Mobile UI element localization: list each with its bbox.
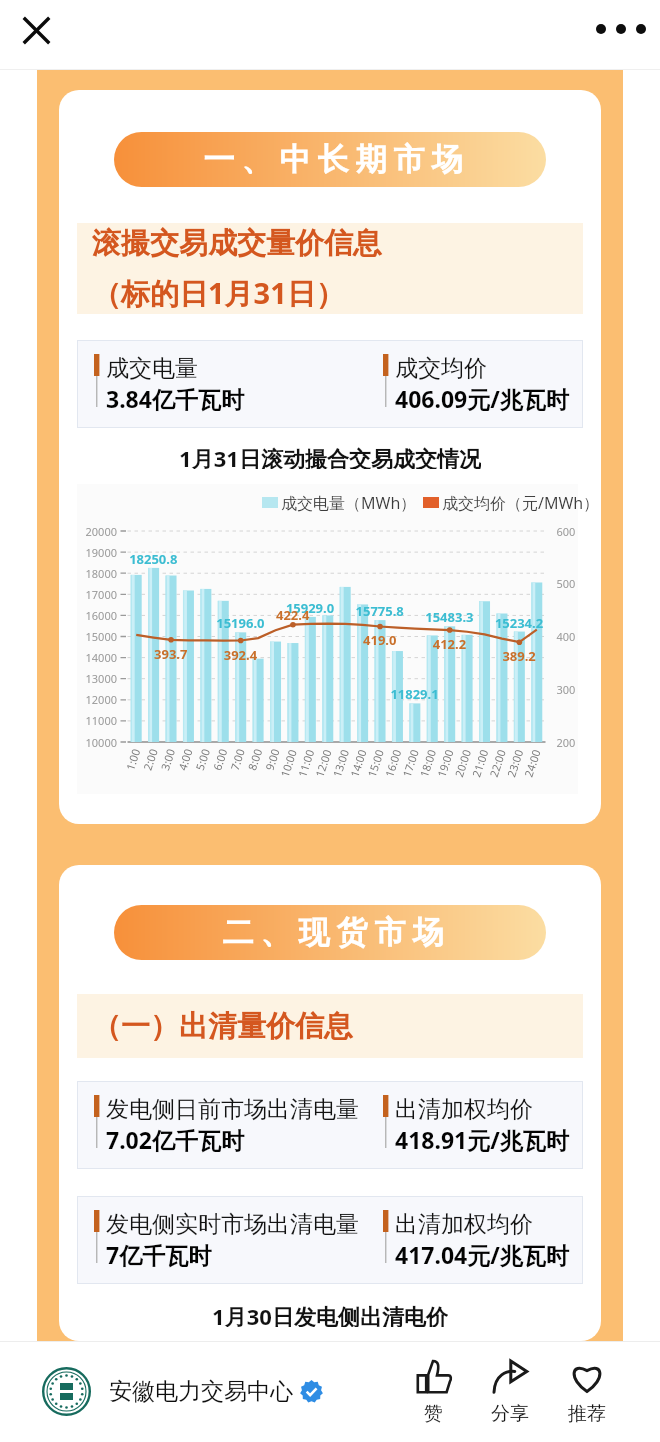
button[interactable]: 一、中长期市场 [114,132,546,187]
staticText: 406.09元/兆瓦时 [395,383,569,414]
staticText: 安徽电力交易中心 [109,1377,293,1406]
staticText: 分享 [491,1402,529,1426]
staticText: 推荐 [568,1402,606,1426]
staticText: 3.84亿千瓦时 [106,383,244,414]
staticText: 1月30日发电侧出清电价 [212,1301,448,1327]
staticText: 二、现货市场 [219,913,447,952]
staticText: 成交电量 [106,354,198,383]
button[interactable]: Close [11,5,61,55]
button[interactable]: 推荐 [561,1353,613,1430]
staticText: （一）出清量价信息 [92,1008,353,1045]
staticText: 7.02亿千瓦时 [106,1124,244,1155]
staticText: 1月31日滚动撮合交易成交情况 [179,443,481,469]
button[interactable]: 安徽电力交易中心 [42,1367,323,1416]
button[interactable]: 分享 [484,1353,536,1430]
staticText: 成交均价 [395,354,487,383]
button[interactable]: 赞 [407,1353,459,1430]
staticText: 一、中长期市场 [200,140,466,179]
staticText: 出清加权均价 [395,1095,533,1124]
button[interactable]: 二、现货市场 [114,905,546,960]
staticText: 417.04元/兆瓦时 [395,1239,569,1270]
staticText: 赞 [424,1402,443,1426]
staticText: （标的日1月31日） [92,273,345,313]
button[interactable]: More options [591,0,651,59]
staticText: 418.91元/兆瓦时 [395,1124,569,1155]
staticText: 滚撮交易成交量价信息 [92,225,382,262]
staticText: 出清加权均价 [395,1210,533,1239]
staticText: 发电侧实时市场出清电量 [106,1210,359,1239]
staticText: 7亿千瓦时 [106,1239,212,1270]
staticText: 发电侧日前市场出清电量 [106,1095,359,1124]
